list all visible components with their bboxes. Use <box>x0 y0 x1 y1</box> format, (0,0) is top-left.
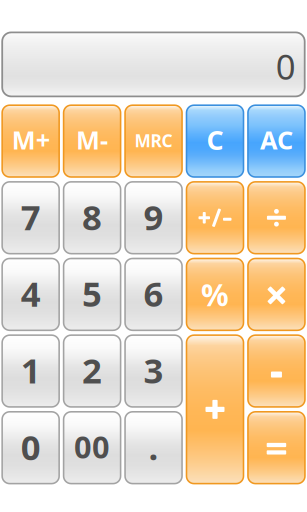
button[interactable]: 1 <box>2 335 59 407</box>
button[interactable]: Subtract <box>248 335 305 407</box>
staticText: 7 <box>21 194 41 240</box>
staticText: . <box>149 424 159 470</box>
staticText: 9 <box>144 194 164 240</box>
button[interactable]: 4 <box>2 258 59 330</box>
staticText: MRC <box>135 129 173 152</box>
staticText: 00 <box>74 426 110 467</box>
button[interactable]: Divide <box>248 182 305 254</box>
staticText: M+ <box>12 123 50 156</box>
button[interactable]: % <box>186 258 243 330</box>
staticText: 3 <box>144 347 164 393</box>
button[interactable]: 9 <box>125 182 182 254</box>
button[interactable]: C <box>186 105 243 177</box>
staticText: M- <box>76 123 108 156</box>
button[interactable]: M+ <box>2 105 59 177</box>
staticText: C <box>206 122 223 157</box>
staticText: 0 <box>21 424 41 470</box>
staticText: 8 <box>82 194 102 240</box>
button[interactable]: Equals <box>248 412 305 484</box>
button[interactable]: 7 <box>2 182 59 254</box>
button[interactable]: 5 <box>64 258 121 330</box>
staticText: 4 <box>21 270 41 316</box>
staticText: 2 <box>82 347 102 393</box>
staticText: % <box>201 274 229 315</box>
button[interactable]: 0 <box>2 412 59 484</box>
button[interactable]: 3 <box>125 335 182 407</box>
button[interactable]: 6 <box>125 258 182 330</box>
button[interactable]: MRC <box>125 105 182 177</box>
button[interactable]: 2 <box>64 335 121 407</box>
button[interactable]: . <box>125 412 182 484</box>
button[interactable]: AC <box>248 105 305 177</box>
button[interactable]: Multiply <box>248 258 305 330</box>
button[interactable]: 8 <box>64 182 121 254</box>
staticText: 1 <box>21 347 41 393</box>
button[interactable]: Plus or minus <box>186 182 243 254</box>
staticText: 6 <box>144 270 164 316</box>
staticText: 0 <box>276 43 296 89</box>
staticText: AC <box>260 123 293 156</box>
button[interactable]: M- <box>64 105 121 177</box>
staticText: 5 <box>82 270 102 316</box>
button[interactable]: Add <box>186 335 243 483</box>
button[interactable]: 00 <box>64 412 121 484</box>
